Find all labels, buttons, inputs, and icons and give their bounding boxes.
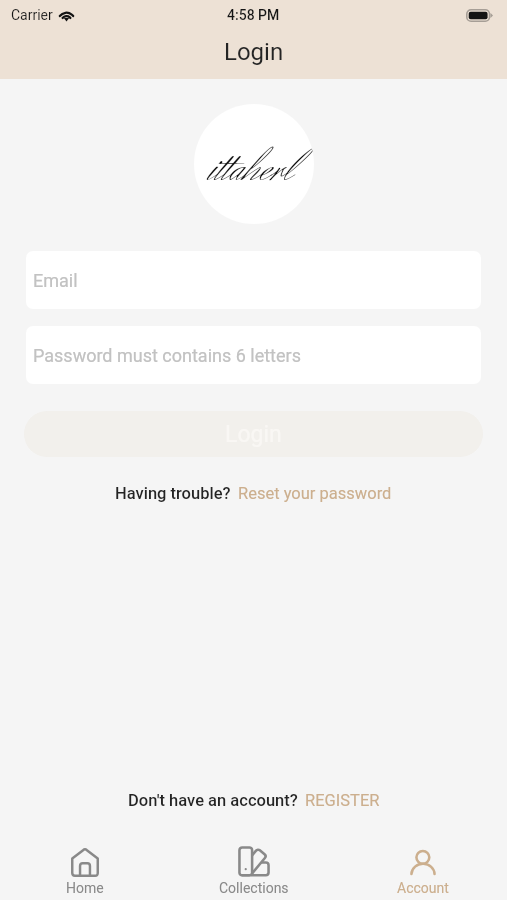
button[interactable]: Collections [169, 847, 338, 900]
staticText: Account [397, 880, 449, 896]
button[interactable]: Account [338, 847, 507, 900]
staticText: Login [225, 421, 282, 448]
staticText: Having trouble? [115, 484, 231, 503]
staticText: Reset your password [238, 484, 392, 503]
button[interactable]: Password must contains 6 letters [26, 326, 481, 384]
button[interactable]: Reset your password [238, 484, 392, 503]
staticText: 4:58 PM [227, 7, 280, 23]
button[interactable]: Email [26, 251, 481, 309]
staticText: Email [33, 270, 78, 291]
staticText: Login [224, 38, 284, 66]
button[interactable]: Home [0, 847, 169, 900]
staticText: ittaherl [208, 135, 294, 205]
staticText: Password must contains 6 letters [33, 345, 301, 366]
staticText: Carrier [11, 7, 53, 23]
staticText: Home [66, 880, 104, 896]
button[interactable]: REGISTER [305, 791, 380, 810]
staticText: Don't have an account? [128, 791, 298, 810]
staticText: Collections [219, 880, 289, 896]
staticText: REGISTER [305, 791, 380, 810]
